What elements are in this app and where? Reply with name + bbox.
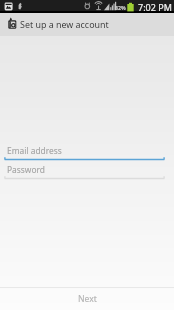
button[interactable]: Password — [0, 164, 174, 179]
staticText: 7:02 PM — [138, 1, 172, 13]
button[interactable]: Email address — [0, 145, 174, 160]
staticText: 82% — [115, 4, 126, 11]
button[interactable]: Next — [0, 288, 174, 310]
staticText: Email address — [7, 145, 62, 156]
staticText: Password — [7, 164, 45, 175]
button[interactable]: Set up a new account — [0, 13, 174, 36]
staticText: Set up a new account — [20, 18, 109, 30]
staticText: Next — [78, 293, 97, 305]
